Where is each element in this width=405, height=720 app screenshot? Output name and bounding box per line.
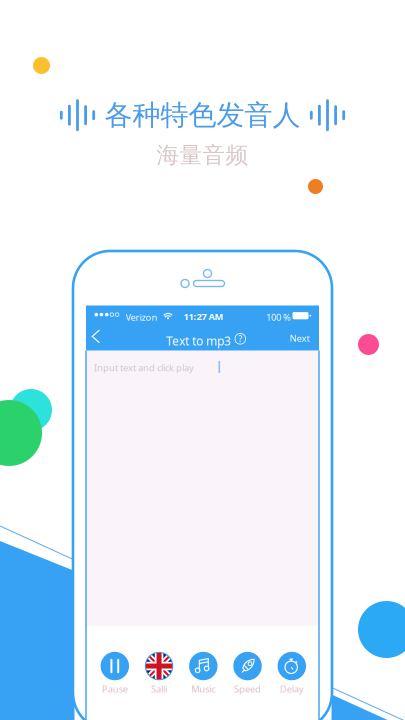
staticText: 11:27 AM bbox=[183, 310, 223, 323]
button[interactable]: Delay bbox=[271, 652, 313, 695]
button[interactable]: Next bbox=[281, 323, 318, 353]
staticText: Text to mp3 bbox=[166, 333, 231, 349]
staticText: 海量音频 bbox=[156, 141, 248, 169]
staticText: Verizon bbox=[125, 311, 157, 323]
button[interactable]: Back bbox=[86, 323, 109, 350]
staticText: Music bbox=[191, 683, 215, 695]
staticText: 各种特色发音人 bbox=[104, 98, 300, 132]
staticText: ? bbox=[238, 332, 242, 345]
button[interactable]: Music bbox=[182, 652, 224, 695]
button[interactable]: Salli bbox=[138, 652, 180, 695]
staticText: 100 % bbox=[266, 311, 291, 323]
staticText: Next bbox=[289, 332, 309, 344]
staticText: Salli bbox=[151, 683, 167, 695]
staticText: Pause bbox=[102, 683, 128, 695]
button[interactable]: Pause bbox=[94, 652, 136, 695]
button[interactable]: Speed bbox=[227, 652, 269, 695]
staticText: Delay bbox=[280, 683, 304, 695]
staticText: Speed bbox=[234, 683, 261, 695]
staticText: Input text and click play bbox=[94, 361, 194, 374]
